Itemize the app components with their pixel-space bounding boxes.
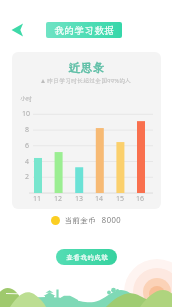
staticText: 11 xyxy=(33,194,42,204)
staticText: 小时 xyxy=(20,95,33,103)
staticText: 14 xyxy=(95,194,104,204)
staticText: 10 xyxy=(22,109,31,119)
staticText: 6 xyxy=(25,141,30,151)
staticText: 2 xyxy=(25,172,30,182)
staticText: 4 xyxy=(25,157,30,167)
staticText: 12 xyxy=(54,194,63,204)
staticText: 我的学习数据 xyxy=(54,24,114,37)
button[interactable]: Back xyxy=(9,21,27,39)
staticText: 13 xyxy=(75,194,84,204)
staticText: 8 xyxy=(25,125,30,135)
staticText: 查看我的成就 xyxy=(66,253,108,262)
staticText: 近思录 xyxy=(12,60,161,76)
button[interactable]: 查看我的成就 xyxy=(56,249,117,265)
staticText: 当前金币 8000 xyxy=(64,215,121,226)
button[interactable]: 我的学习数据 xyxy=(46,22,122,38)
staticText: 16 xyxy=(136,194,145,204)
staticText: 15 xyxy=(116,194,125,204)
staticText: 昨日学习时长超过全国99%的人 xyxy=(47,77,132,85)
